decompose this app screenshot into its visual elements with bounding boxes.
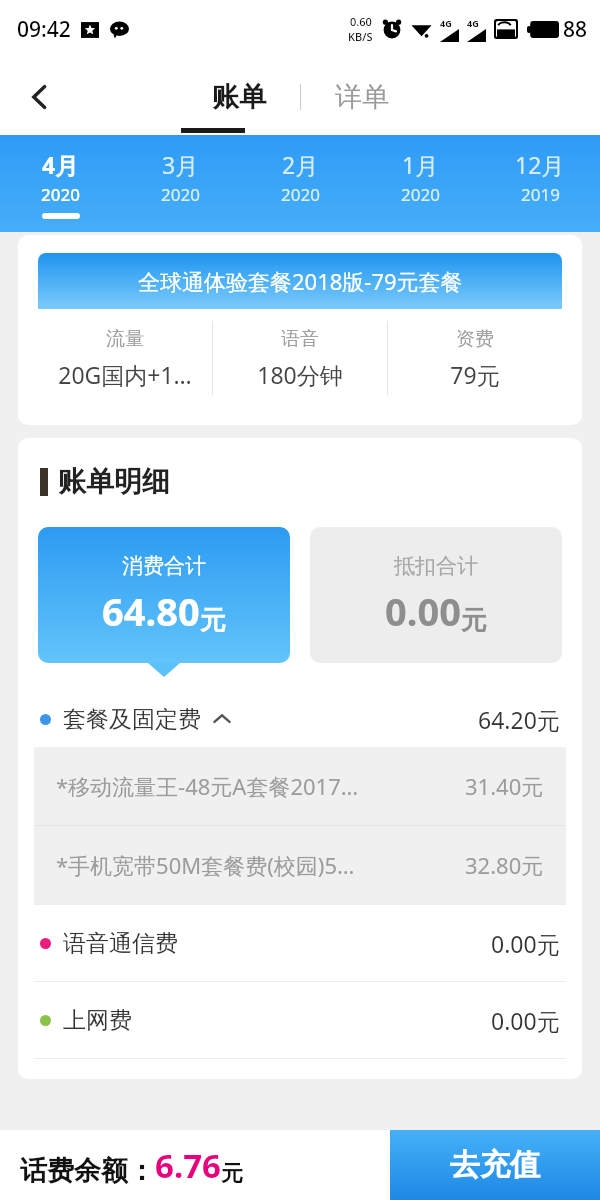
staticText: 6.76: [155, 1143, 221, 1188]
button[interactable]: 套餐及固定费: [18, 691, 582, 747]
button[interactable]: 全球通体验套餐2018版-79元套餐: [18, 235, 582, 425]
staticText: 2020: [401, 183, 440, 206]
staticText: 79元: [450, 359, 500, 390]
staticText: 09:42: [17, 15, 71, 44]
button[interactable]: 1月: [360, 135, 480, 232]
staticText: 64.80: [102, 585, 200, 637]
staticText: 元: [461, 604, 487, 637]
staticText: 0.00元: [491, 928, 560, 959]
staticText: 31.40元: [465, 771, 544, 801]
staticText: 资费: [456, 327, 494, 351]
button[interactable]: 账单: [204, 74, 274, 120]
staticText: 流量: [106, 327, 144, 351]
button[interactable]: *手机宽带50M套餐费(校园)5…: [34, 826, 566, 904]
staticText: 2020: [161, 183, 200, 206]
button[interactable]: 12月: [480, 135, 600, 232]
button[interactable]: Back: [14, 71, 66, 123]
button[interactable]: *移动流量王-48元A套餐2017…: [34, 747, 566, 825]
staticText: 2020: [281, 183, 320, 206]
staticText: 4G: [467, 17, 479, 29]
staticText: 64.20元: [478, 704, 560, 735]
staticText: 账单: [212, 80, 266, 114]
staticText: 上网费: [63, 1006, 132, 1035]
staticText: 3月: [162, 149, 199, 180]
button[interactable]: 详单: [327, 74, 397, 120]
staticText: 0.60: [350, 14, 372, 29]
staticText: 12月: [515, 149, 565, 180]
button[interactable]: 消费合计: [38, 527, 290, 663]
staticText: KB/S: [348, 29, 373, 44]
staticText: 去充值: [450, 1146, 540, 1184]
staticText: 0.00元: [491, 1005, 560, 1036]
button[interactable]: 语音通信费: [18, 905, 582, 981]
staticText: 元: [200, 604, 226, 637]
staticText: 2019: [521, 183, 560, 206]
staticText: 账单明细: [58, 464, 170, 499]
staticText: 4月: [42, 149, 79, 180]
staticText: 话费余额：: [20, 1154, 155, 1188]
button[interactable]: 抵扣合计: [310, 527, 562, 663]
staticText: 2020: [41, 183, 80, 206]
staticText: 消费合计: [122, 553, 206, 579]
button[interactable]: 2月: [240, 135, 360, 232]
staticText: *手机宽带50M套餐费(校园)5…: [56, 850, 453, 880]
staticText: 全球通体验套餐2018版-79元套餐: [138, 266, 463, 296]
staticText: 0.00: [385, 585, 461, 637]
staticText: 语音通信费: [63, 929, 178, 958]
staticText: 32.80元: [465, 850, 544, 880]
staticText: 4G: [440, 17, 452, 29]
staticText: 元: [221, 1160, 243, 1188]
button[interactable]: 4月: [0, 135, 120, 232]
staticText: 抵扣合计: [394, 553, 478, 579]
staticText: 88: [563, 15, 588, 44]
staticText: 详单: [335, 80, 389, 114]
staticText: 1月: [402, 149, 439, 180]
staticText: 套餐及固定费: [63, 705, 201, 734]
staticText: 2月: [282, 149, 319, 180]
button[interactable]: 去充值: [390, 1130, 600, 1200]
button[interactable]: 3月: [120, 135, 240, 232]
button[interactable]: 上网费: [18, 982, 582, 1058]
staticText: *移动流量王-48元A套餐2017…: [56, 771, 453, 801]
staticText: 180分钟: [257, 359, 343, 390]
staticText: 语音: [281, 327, 319, 351]
staticText: 20G国内+1…: [58, 359, 192, 390]
